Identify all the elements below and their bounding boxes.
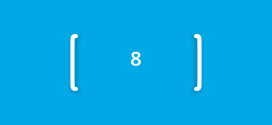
- staticText: 8: [130, 45, 141, 71]
- button[interactable]: Scan barcode: [0, 0, 272, 125]
